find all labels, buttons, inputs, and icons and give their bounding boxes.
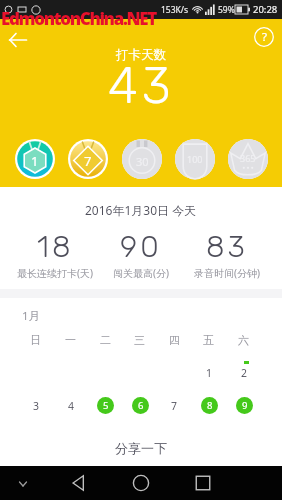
staticText: 1月 — [22, 308, 41, 324]
button[interactable]: 5 — [97, 397, 114, 414]
button[interactable]: Hide — [11, 472, 35, 496]
button[interactable]: 7 — [166, 397, 183, 414]
staticText: 100 — [187, 153, 203, 165]
staticText: 闯关最高(分) — [113, 266, 169, 280]
button[interactable]: Back — [0, 18, 40, 62]
button[interactable]: 4 — [63, 397, 80, 414]
staticText: 四 — [169, 333, 180, 347]
staticText: EdmontonChina.NET — [1, 7, 156, 30]
staticText: 五 — [203, 333, 214, 347]
staticText: 9 — [242, 399, 248, 412]
button[interactable]: Help — [246, 19, 282, 55]
staticText: 43 — [108, 56, 175, 115]
staticText: 分享一下 — [115, 440, 167, 456]
button[interactable]: 2 — [236, 364, 253, 381]
staticText: 8 — [207, 399, 213, 412]
staticText: 365 — [240, 152, 256, 164]
button[interactable]: Recents — [186, 466, 220, 500]
staticText: 最长连续打卡(天) — [17, 266, 93, 280]
button[interactable]: 分享一下 — [0, 435, 282, 461]
staticText: 90 — [120, 229, 162, 265]
staticText: 4 — [68, 399, 75, 413]
staticText: 3 — [33, 399, 40, 413]
staticText: 日 — [30, 333, 41, 347]
staticText: 录音时间(分钟) — [194, 266, 260, 280]
button[interactable]: Home — [124, 466, 158, 500]
staticText: 1 — [206, 366, 213, 380]
staticText: 20:28 — [253, 3, 278, 16]
staticText: 18 — [37, 229, 74, 265]
staticText: 5 — [103, 399, 109, 412]
staticText: 六 — [238, 333, 249, 347]
staticText: ? — [262, 29, 267, 45]
staticText: 153K/s — [161, 4, 189, 16]
staticText: 6 — [138, 399, 144, 412]
button[interactable]: 6 — [132, 397, 149, 414]
button[interactable]: Badge 7 — [68, 139, 108, 179]
button[interactable]: 1 — [201, 364, 218, 381]
button[interactable]: Badge 30 — [122, 139, 162, 179]
staticText: 7 — [171, 399, 178, 413]
staticText: 三 — [134, 333, 145, 347]
staticText: 2 — [241, 366, 248, 380]
staticText: 30 — [136, 154, 149, 169]
staticText: 7 — [84, 152, 92, 170]
button[interactable]: 9 — [236, 397, 253, 414]
staticText: 二 — [100, 333, 111, 347]
staticText: 打卡天数 — [116, 47, 166, 63]
button[interactable]: Badge 1 — [15, 139, 55, 179]
button[interactable]: Badge 100 — [175, 139, 215, 179]
button[interactable]: Badge 365 — [228, 139, 268, 179]
staticText: 一 — [65, 333, 76, 347]
staticText: 83 — [206, 229, 248, 265]
staticText: 59% — [218, 4, 235, 16]
staticText: 1 — [31, 152, 39, 170]
button[interactable]: 3 — [28, 397, 45, 414]
button[interactable]: 8 — [201, 397, 218, 414]
button[interactable]: Back — [62, 466, 96, 500]
staticText: 2016年1月30日 今天 — [85, 202, 197, 218]
